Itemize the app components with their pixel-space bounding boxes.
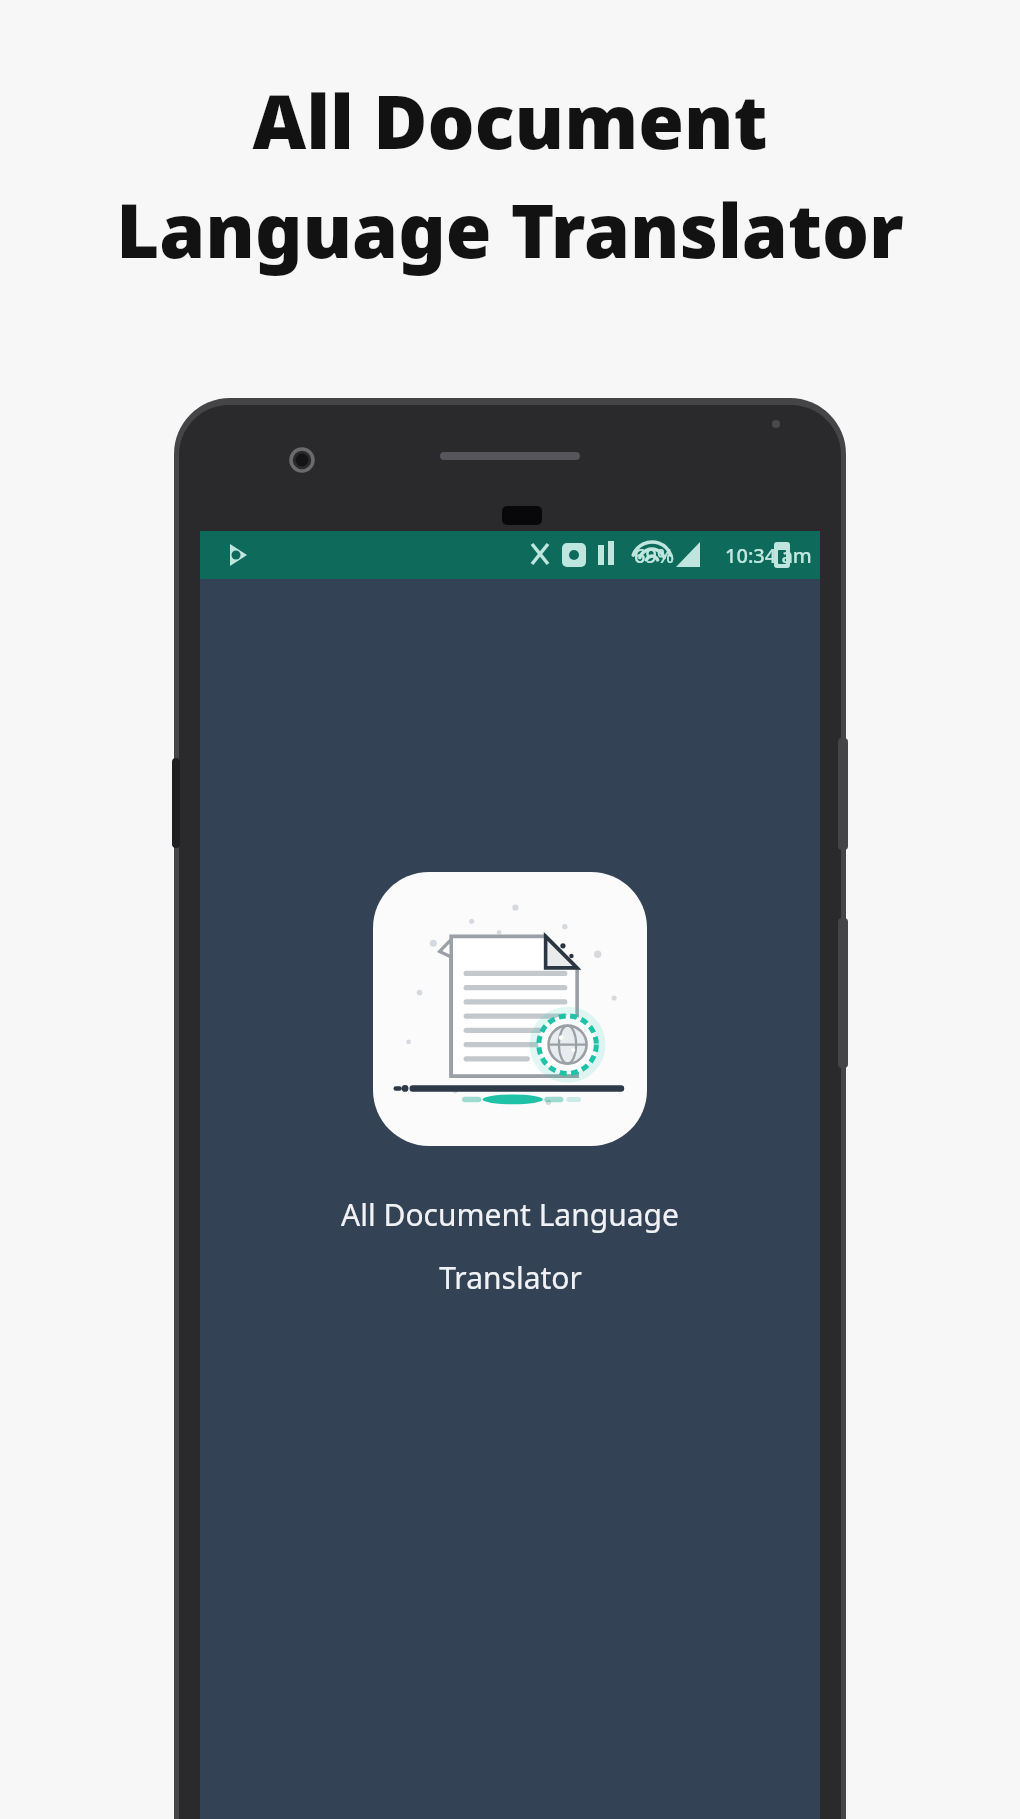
staticText: All Document bbox=[252, 70, 768, 171]
staticText: All Document Language bbox=[341, 1194, 679, 1235]
staticText: 10:34 am bbox=[725, 542, 812, 569]
staticText: Translator bbox=[439, 1257, 582, 1298]
staticText: 69% bbox=[634, 542, 674, 569]
button[interactable]: All Document Language Translator app ico… bbox=[373, 872, 647, 1146]
staticText: Language Translator bbox=[116, 179, 904, 280]
